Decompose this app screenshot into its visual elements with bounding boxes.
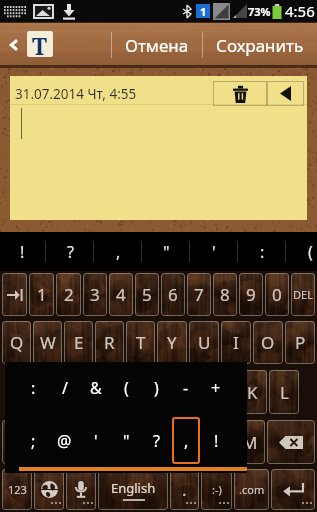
button[interactable]: M	[235, 420, 265, 464]
button[interactable]: E	[64, 321, 93, 364]
staticText: R	[104, 331, 115, 354]
button[interactable]: Back	[0, 22, 27, 68]
staticText: DEL	[293, 287, 313, 302]
button[interactable]: T	[126, 321, 155, 364]
button[interactable]: H	[173, 370, 203, 414]
button[interactable]: !	[0, 232, 46, 271]
button[interactable]: "	[142, 232, 190, 271]
button[interactable]: 1	[29, 273, 54, 316]
button[interactable]: "	[112, 417, 140, 464]
button[interactable]: SHIFT	[2, 420, 43, 464]
staticText: Сохранить	[216, 34, 304, 57]
staticText: J	[218, 381, 223, 404]
staticText: T	[136, 331, 146, 354]
button[interactable]: ;	[19, 417, 48, 464]
button[interactable]: &	[81, 365, 110, 411]
button[interactable]: !	[202, 417, 230, 464]
button[interactable]: N	[203, 420, 233, 464]
button[interactable]: BACKSPACE	[267, 420, 315, 464]
staticText: U	[198, 331, 211, 354]
button[interactable]: K	[237, 370, 267, 414]
staticText: Q	[10, 331, 24, 354]
button[interactable]: O	[253, 321, 283, 364]
staticText: 4:56	[285, 1, 315, 21]
staticText: Z	[55, 431, 65, 454]
button[interactable]: DEL	[291, 273, 315, 316]
button[interactable]: D	[79, 370, 108, 414]
staticText: +	[211, 377, 221, 399]
button[interactable]: W	[33, 321, 62, 364]
button[interactable]: 4	[109, 273, 133, 316]
button[interactable]: V	[139, 420, 169, 464]
button[interactable]: .	[170, 469, 199, 510]
button[interactable]: 0	[265, 273, 289, 316]
button[interactable]: Y	[157, 321, 187, 364]
button[interactable]: 6	[161, 273, 185, 316]
button[interactable]: 8	[213, 273, 237, 316]
button[interactable]: B	[171, 420, 201, 464]
button[interactable]: U	[189, 321, 219, 364]
button[interactable]: X	[76, 420, 105, 464]
button[interactable]: '	[190, 232, 238, 271]
button[interactable]: C	[107, 420, 137, 464]
button[interactable]: (	[112, 365, 140, 411]
button[interactable]: Q	[2, 321, 31, 364]
staticText: 73%	[248, 4, 271, 19]
button[interactable]: ,	[94, 232, 142, 271]
staticText: ?	[67, 241, 74, 263]
button[interactable]: English	[98, 469, 168, 510]
button[interactable]: F	[110, 370, 139, 414]
button[interactable]: 3	[83, 273, 107, 316]
button[interactable]: P	[285, 321, 315, 364]
staticText: 4	[116, 283, 126, 306]
staticText: !	[20, 241, 25, 263]
button[interactable]: Text style	[27, 31, 53, 57]
button[interactable]	[2, 273, 27, 316]
staticText: 123	[8, 482, 27, 497]
button[interactable]: @	[50, 417, 79, 464]
button[interactable]: ,	[172, 417, 200, 464]
staticText: T	[32, 31, 48, 56]
button[interactable]: 9	[239, 273, 263, 316]
staticText: 7	[194, 283, 204, 306]
button[interactable]: MIC	[66, 469, 96, 510]
button[interactable]: -	[172, 365, 200, 411]
button[interactable]: :	[238, 232, 286, 271]
button[interactable]: /	[50, 365, 79, 411]
button[interactable]: S	[48, 370, 77, 414]
button[interactable]: Отмена	[112, 22, 202, 68]
button[interactable]: :	[19, 365, 48, 411]
button[interactable]: I	[221, 321, 251, 364]
button[interactable]: Сохранить	[203, 22, 317, 68]
button[interactable]: :-)	[201, 469, 232, 510]
button[interactable]: R	[95, 321, 124, 364]
button[interactable]: +	[202, 365, 230, 411]
button[interactable]: Previous	[267, 81, 304, 106]
button[interactable]: ?	[46, 232, 94, 271]
staticText: &	[90, 377, 102, 399]
button[interactable]: 7	[187, 273, 211, 316]
button[interactable]: 123	[2, 469, 32, 510]
button[interactable]: ENTER	[271, 469, 315, 510]
staticText: I	[233, 331, 239, 354]
button[interactable]: Delete note	[213, 81, 267, 106]
button[interactable]: (	[286, 232, 317, 271]
staticText: E	[74, 331, 84, 354]
button[interactable]: 5	[135, 273, 159, 316]
button[interactable]: )	[142, 365, 170, 411]
staticText: L	[280, 381, 289, 404]
button[interactable]: Z	[45, 420, 74, 464]
staticText: "	[163, 241, 170, 263]
button[interactable]: .com	[234, 469, 269, 510]
button[interactable]: GLOBE	[34, 469, 64, 510]
button[interactable]: 2	[56, 273, 81, 316]
staticText: (	[124, 377, 129, 399]
staticText: 8	[220, 283, 230, 306]
button[interactable]: A	[17, 370, 46, 414]
button[interactable]: G	[141, 370, 171, 414]
button[interactable]: L	[269, 370, 299, 414]
staticText: X	[86, 431, 96, 454]
button[interactable]: J	[205, 370, 235, 414]
button[interactable]: ?	[142, 417, 170, 464]
button[interactable]: '	[81, 417, 110, 464]
